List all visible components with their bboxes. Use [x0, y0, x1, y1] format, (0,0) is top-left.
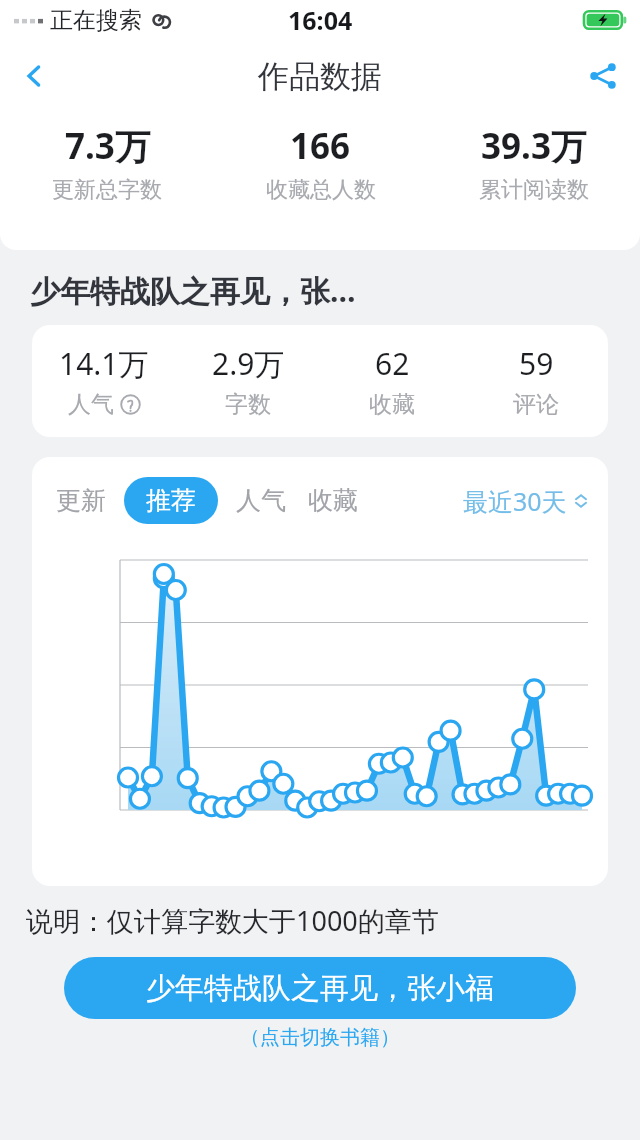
staticText: 正在搜索 [50, 6, 142, 35]
staticText: 说明：仅计算字数大于1000的章节 [26, 902, 439, 939]
staticText: 59 [519, 343, 554, 384]
button[interactable]: 7.3万 [0, 122, 214, 204]
staticText: 7.3万 [65, 122, 150, 170]
button[interactable]: 推荐 [124, 477, 218, 524]
button[interactable]: 人气 [232, 477, 290, 524]
staticText: 收藏 [369, 390, 415, 419]
staticText: 2.9万 [212, 343, 285, 384]
button[interactable]: Back [0, 40, 70, 112]
staticText: 166 [290, 122, 351, 170]
staticText: 39.3万 [481, 122, 586, 170]
button[interactable]: 39.3万 [427, 122, 640, 204]
staticText: 62 [375, 343, 410, 384]
staticText: 更新 [56, 485, 106, 516]
button[interactable]: 少年特战队之再见，张小福 [64, 957, 576, 1019]
staticText: 收藏 [308, 485, 358, 516]
staticText: 最近30天 [463, 484, 567, 518]
staticText: 推荐 [146, 485, 196, 516]
button[interactable]: 166 [214, 122, 427, 204]
staticText: 评论 [513, 390, 559, 419]
staticText: 少年特战队之再见，张小福 [146, 970, 494, 1007]
staticText: 14.1万 [59, 343, 149, 384]
button[interactable]: 最近30天 [461, 480, 592, 522]
button[interactable]: 14.1万 [32, 325, 608, 437]
staticText: 收藏总人数 [266, 176, 376, 204]
button[interactable]: 收藏 [304, 477, 362, 524]
staticText: 字数 [225, 390, 271, 419]
staticText: 16:04 [288, 3, 353, 37]
staticText: 人气 [236, 485, 286, 516]
staticText: 累计阅读数 [479, 176, 589, 204]
button[interactable]: Share [566, 40, 640, 112]
staticText: （点击切换书籍） [0, 1025, 640, 1050]
staticText: 更新总字数 [52, 176, 162, 204]
staticText: 少年特战队之再见，张… [30, 270, 356, 311]
staticText: 人气 [68, 390, 114, 419]
button[interactable]: 更新 [52, 477, 110, 524]
staticText: 作品数据 [258, 57, 382, 96]
